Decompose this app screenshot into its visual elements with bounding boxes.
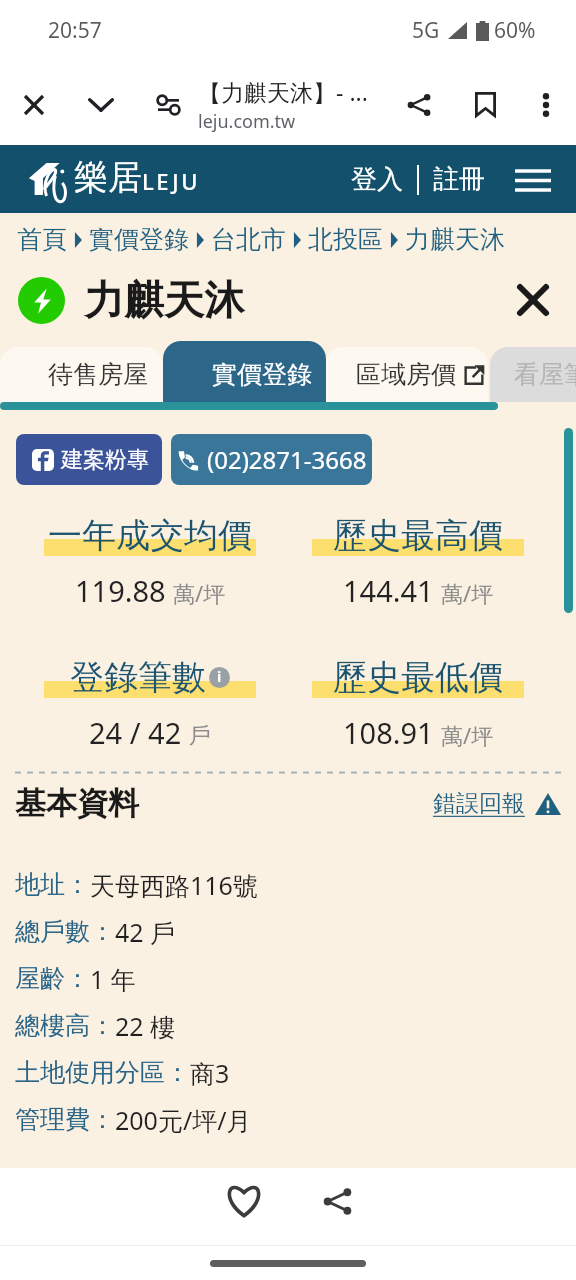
staticText: 屋齡： [15, 963, 90, 994]
button[interactable]: Favorite [216, 1172, 272, 1228]
staticText: 力麒天沐 [405, 224, 505, 255]
staticText: 萬/坪 [441, 720, 494, 750]
button[interactable]: Close [8, 79, 59, 130]
button[interactable]: 錯誤回報 [433, 789, 561, 818]
staticText: 首頁 [17, 224, 67, 255]
staticText: 登錄筆數 [70, 656, 206, 699]
staticText: 20:57 [48, 16, 102, 45]
staticText: 實價登錄 [212, 359, 312, 390]
staticText: 土地使用分區： [15, 1057, 190, 1088]
staticText: 歷史最高價 [333, 514, 503, 557]
staticText: 萬/坪 [173, 578, 226, 608]
staticText: 總樓高： [15, 1010, 115, 1041]
staticText: (02)2871-3668 [207, 443, 367, 476]
staticText: LEJU [142, 166, 200, 196]
staticText: 註冊 [433, 163, 485, 196]
staticText: 22 樓 [115, 1009, 176, 1043]
button[interactable]: 首頁 [17, 224, 67, 255]
staticText: 管理費： [15, 1104, 115, 1135]
staticText: 基本資料 [15, 784, 139, 823]
button[interactable]: 實價登錄 [89, 224, 189, 255]
button[interactable]: Share [393, 79, 444, 130]
button[interactable]: (02)2871-3668 [171, 434, 372, 485]
staticText: 登入 [351, 163, 403, 196]
button[interactable]: Close [510, 277, 556, 323]
button[interactable]: 區域房價 [325, 347, 488, 402]
button[interactable]: 待售房屋 [0, 347, 163, 402]
button[interactable]: 台北市 [211, 224, 286, 255]
staticText: 地址： [15, 869, 90, 900]
button[interactable]: 北投區 [308, 224, 383, 255]
staticText: 樂居 [74, 156, 142, 199]
staticText: i [217, 667, 222, 686]
staticText: 建案粉專 [61, 446, 149, 474]
staticText: 119.88 [75, 571, 166, 610]
staticText: 商3 [190, 1056, 230, 1090]
staticText: 144.41 [343, 571, 434, 610]
staticText: 42 戶 [115, 915, 176, 949]
button[interactable]: Bookmark [460, 79, 511, 130]
staticText: 萬/坪 [441, 578, 494, 608]
staticText: 【力麒天沐】- ... [198, 76, 368, 107]
button[interactable]: 力麒天沐 [405, 224, 505, 255]
staticText: 實價登錄 [89, 224, 189, 255]
button[interactable]: 登入 [348, 155, 406, 204]
staticText: 錯誤回報 [433, 789, 525, 818]
staticText: 區域房價 [356, 359, 456, 390]
staticText: 看屋筆 [514, 359, 576, 390]
button[interactable]: 建案粉專 [16, 434, 162, 485]
button[interactable]: 註冊 [430, 155, 488, 204]
staticText: 24 / 42 [89, 713, 182, 752]
staticText: 歷史最低價 [333, 656, 503, 699]
staticText: 一年成交均價 [48, 514, 252, 557]
staticText: 北投區 [308, 224, 383, 255]
button[interactable]: More options [520, 79, 571, 130]
staticText: 5G [412, 16, 440, 45]
staticText: 200元/坪/月 [115, 1103, 252, 1137]
staticText: 總戶數： [15, 916, 115, 947]
staticText: 待售房屋 [48, 359, 148, 390]
staticText: 108.91 [343, 713, 434, 752]
staticText: 台北市 [211, 224, 286, 255]
button[interactable]: Page info [143, 79, 194, 130]
staticText: 1 年 [90, 962, 136, 996]
button[interactable]: Menu [510, 157, 556, 203]
staticText: leju.com.tw [198, 109, 296, 134]
button[interactable]: 實價登錄 [163, 341, 326, 402]
staticText: 天母西路116號 [90, 868, 258, 902]
staticText: 60% [494, 16, 536, 45]
button[interactable]: Share [309, 1173, 365, 1229]
staticText: 力麒天沐 [84, 275, 244, 325]
button[interactable]: Expand [75, 79, 126, 130]
staticText: 戶 [189, 722, 211, 750]
